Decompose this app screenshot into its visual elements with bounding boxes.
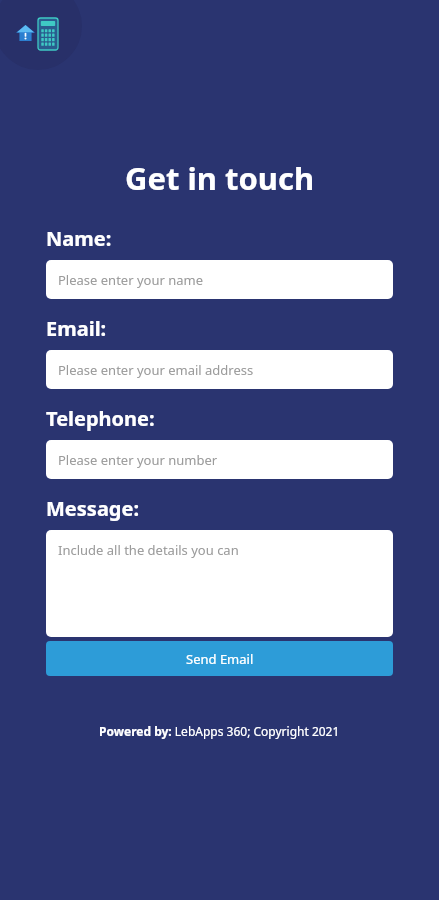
button[interactable]: Send Email bbox=[46, 641, 393, 676]
staticText: Get in touch bbox=[125, 157, 315, 199]
staticText: Telephone: bbox=[46, 405, 155, 432]
staticText: Please enter your email address bbox=[58, 361, 254, 379]
button[interactable]: Please enter your number bbox=[46, 440, 393, 479]
staticText: Email: bbox=[46, 315, 107, 342]
staticText: Please enter your number bbox=[58, 451, 218, 469]
staticText: Include all the details you can bbox=[58, 541, 239, 559]
staticText: Name: bbox=[46, 225, 112, 252]
staticText: Send Email bbox=[186, 650, 254, 668]
staticText: Message: bbox=[46, 495, 140, 522]
button[interactable]: Please enter your name bbox=[46, 260, 393, 299]
button[interactable]: LebApps 360 logo bbox=[10, 14, 70, 56]
staticText: Please enter your name bbox=[58, 271, 204, 289]
button[interactable]: Please enter your email address bbox=[46, 350, 393, 389]
button[interactable]: Include all the details you can bbox=[46, 530, 393, 637]
staticText: Powered by: LebApps 360; Copyright 2021 bbox=[99, 723, 340, 739]
